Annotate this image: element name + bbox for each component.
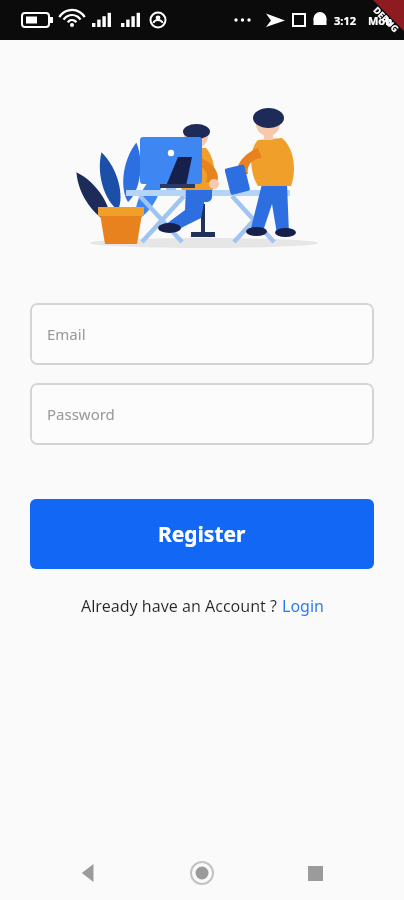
staticText: Register: [158, 520, 246, 549]
staticText: Email: [47, 324, 86, 344]
staticText: Mob: [368, 13, 393, 28]
button[interactable]: Login: [282, 595, 324, 617]
button[interactable]: Register: [30, 499, 374, 569]
staticText: Login: [282, 595, 324, 617]
staticText: 3:12: [334, 13, 356, 28]
button[interactable]: Recent apps: [291, 849, 339, 897]
staticText: Password: [47, 404, 115, 424]
button[interactable]: Password: [30, 383, 374, 445]
staticText: Already have an Account ?: [81, 595, 282, 617]
staticText: DEBUG: [371, 4, 402, 34]
button[interactable]: Home: [178, 849, 226, 897]
button[interactable]: Back: [65, 849, 113, 897]
button[interactable]: Email: [30, 303, 374, 365]
